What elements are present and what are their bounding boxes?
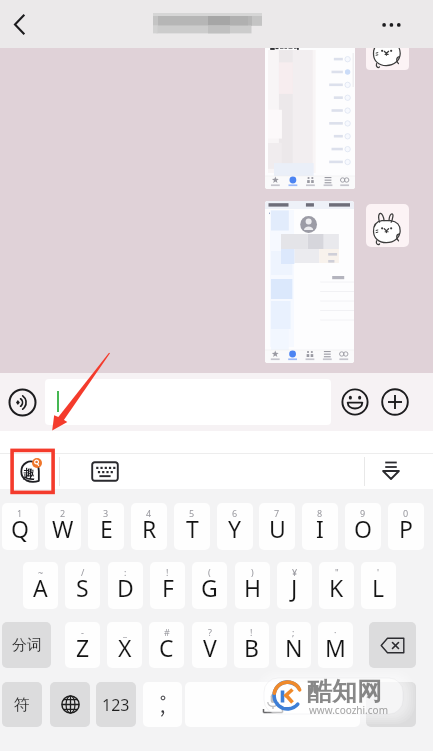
- staticText: ;: [292, 626, 295, 638]
- staticText: ': [377, 566, 380, 578]
- button[interactable]: ): [235, 562, 270, 609]
- button[interactable]: 8: [302, 503, 338, 550]
- staticText: ": [335, 566, 339, 578]
- button[interactable]: [265, 48, 355, 189]
- staticText: R: [142, 513, 157, 544]
- staticText: 7: [274, 507, 280, 519]
- button[interactable]: [143, 682, 182, 727]
- button[interactable]: Emoji: [341, 388, 369, 416]
- button[interactable]: 分词: [2, 622, 51, 668]
- staticText: !: [250, 626, 253, 638]
- button[interactable]: ': [361, 562, 396, 609]
- staticText: U: [269, 513, 286, 544]
- button[interactable]: Enter: [366, 682, 416, 727]
- button[interactable]: ·: [318, 622, 353, 668]
- button[interactable]: Sticker: [366, 204, 409, 247]
- staticText: D: [117, 572, 134, 603]
- staticText: 0: [403, 507, 409, 519]
- button[interactable]: Keyboard: [91, 461, 119, 482]
- button[interactable]: :: [108, 562, 143, 609]
- button[interactable]: Switch language: [50, 682, 90, 727]
- staticText: (: [208, 566, 211, 578]
- staticText: L: [372, 572, 385, 603]
- staticText: 9: [360, 507, 366, 519]
- staticText: I: [316, 513, 324, 544]
- staticText: :: [124, 566, 127, 578]
- button[interactable]: 4: [131, 503, 167, 550]
- button[interactable]: 符: [2, 682, 42, 727]
- staticText: /: [81, 566, 85, 578]
- staticText: E: [100, 513, 113, 544]
- staticText: 8: [317, 507, 323, 519]
- staticText: ¥: [292, 566, 298, 578]
- staticText: K: [329, 572, 344, 603]
- button[interactable]: Stickers: [17, 459, 43, 485]
- button[interactable]: Voice input: [8, 388, 37, 417]
- staticText: M: [325, 632, 346, 663]
- button[interactable]: More actions: [381, 388, 409, 416]
- button[interactable]: 3: [88, 503, 124, 550]
- staticText: 1: [17, 507, 23, 519]
- staticText: H: [244, 572, 262, 603]
- staticText: O: [354, 513, 372, 544]
- button[interactable]: !: [150, 562, 185, 609]
- staticText: ): [251, 566, 254, 578]
- button[interactable]: More options: [373, 0, 417, 48]
- button[interactable]: !: [234, 622, 269, 668]
- staticText: 符: [14, 695, 30, 715]
- staticText: www.coozhi.com: [309, 703, 388, 717]
- button[interactable]: Back: [0, 0, 44, 48]
- staticText: ?: [208, 626, 212, 638]
- button[interactable]: 5: [174, 503, 210, 550]
- button[interactable]: 9: [345, 503, 381, 550]
- button[interactable]: _: [107, 622, 142, 668]
- button[interactable]: 0: [388, 503, 424, 550]
- staticText: Q: [11, 513, 29, 544]
- staticText: _: [123, 626, 127, 638]
- button[interactable]: -: [65, 622, 100, 668]
- button[interactable]: /: [65, 562, 100, 609]
- button[interactable]: 6: [217, 503, 253, 550]
- staticText: W: [52, 513, 74, 544]
- staticText: 3: [103, 507, 109, 519]
- button[interactable]: [265, 201, 354, 363]
- staticText: !: [166, 566, 169, 578]
- staticText: 2: [60, 507, 66, 519]
- staticText: G: [201, 572, 218, 603]
- button[interactable]: 7: [259, 503, 295, 550]
- button[interactable]: #: [149, 622, 184, 668]
- staticText: T: [186, 513, 199, 544]
- staticText: 酷知网: [307, 676, 382, 707]
- staticText: #: [164, 626, 170, 638]
- staticText: N: [285, 632, 303, 663]
- staticText: 123: [102, 694, 130, 716]
- staticText: ~: [38, 566, 44, 578]
- staticText: Y: [228, 513, 242, 544]
- button[interactable]: 1: [2, 503, 38, 550]
- button[interactable]: ¥: [277, 562, 312, 609]
- staticText: -: [81, 626, 84, 638]
- staticText: Z: [76, 632, 90, 663]
- button[interactable]: Hide keyboard: [379, 459, 403, 483]
- staticText: 4: [146, 507, 152, 519]
- staticText: V: [203, 632, 217, 663]
- staticText: S: [76, 572, 89, 603]
- staticText: A: [33, 572, 48, 603]
- button[interactable]: (: [192, 562, 227, 609]
- staticText: X: [118, 632, 132, 663]
- staticText: B: [244, 632, 259, 663]
- button[interactable]: [45, 379, 331, 425]
- staticText: 5: [189, 507, 195, 519]
- button[interactable]: Backspace: [369, 622, 416, 668]
- staticText: F: [162, 572, 174, 603]
- button[interactable]: ?: [192, 622, 227, 668]
- button[interactable]: 123: [96, 682, 136, 727]
- staticText: 分词: [12, 636, 42, 655]
- button[interactable]: ~: [23, 562, 58, 609]
- staticText: J: [291, 572, 298, 603]
- button[interactable]: Sticker: [366, 48, 409, 70]
- button[interactable]: 2: [45, 503, 81, 550]
- button[interactable]: Space: [185, 682, 360, 727]
- button[interactable]: ": [319, 562, 354, 609]
- button[interactable]: ;: [276, 622, 311, 668]
